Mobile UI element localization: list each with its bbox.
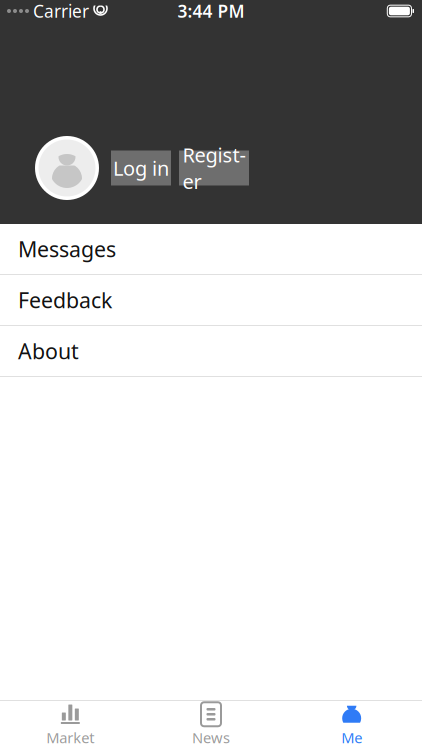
staticText: Messages: [18, 235, 116, 263]
button[interactable]: About: [0, 326, 422, 376]
staticText: 3:44 PM: [177, 0, 244, 22]
button[interactable]: Messages: [0, 224, 422, 274]
staticText: Log in: [113, 155, 169, 181]
staticText: News: [192, 728, 230, 747]
button[interactable]: Log in: [111, 150, 171, 185]
staticText: Register: [182, 141, 245, 194]
staticText: Me: [341, 728, 362, 747]
button[interactable]: News: [141, 701, 281, 750]
staticText: Market: [46, 728, 94, 747]
button[interactable]: Market: [0, 701, 141, 750]
staticText: About: [18, 337, 79, 365]
staticText: Carrier: [33, 0, 89, 22]
button[interactable]: Register: [179, 150, 249, 185]
staticText: Feedback: [18, 286, 112, 314]
button[interactable]: Feedback: [0, 275, 422, 325]
button[interactable]: Me: [281, 701, 422, 750]
